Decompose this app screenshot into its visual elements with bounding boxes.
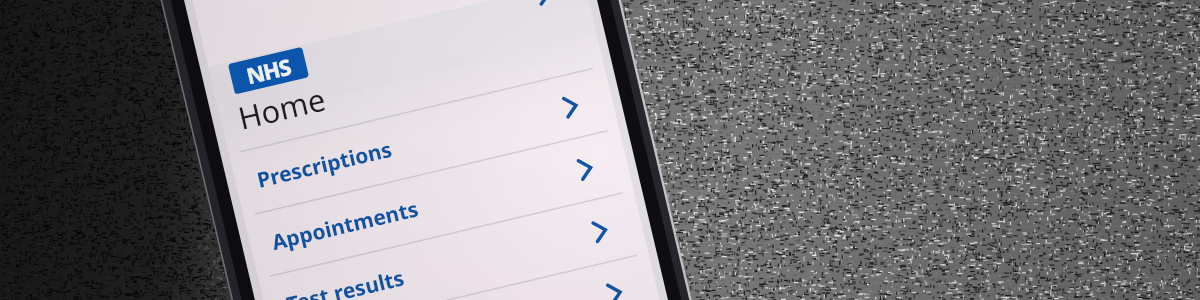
button[interactable]: NHS App Home list on a phone (0, 0, 1200, 300)
